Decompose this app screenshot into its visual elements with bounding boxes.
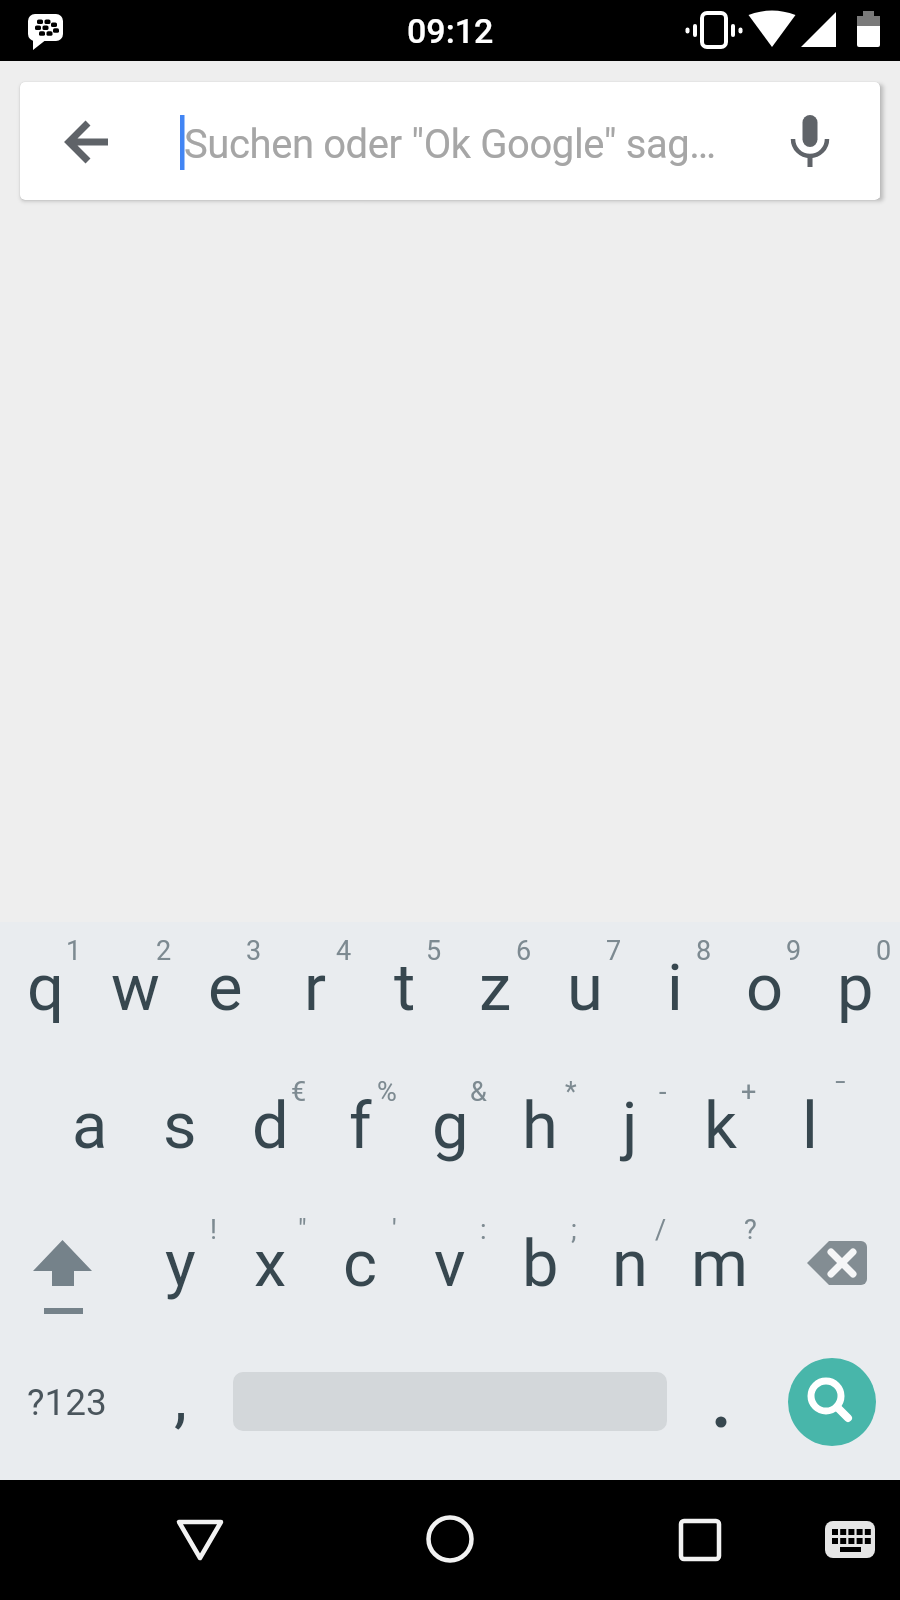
button[interactable] xyxy=(815,1511,885,1569)
staticText: € xyxy=(291,1076,307,1108)
button[interactable] xyxy=(420,1509,480,1569)
staticText: * xyxy=(565,1076,577,1108)
button[interactable] xyxy=(765,1198,900,1336)
staticText: 9 xyxy=(786,935,802,967)
staticText: x xyxy=(254,1226,287,1302)
button[interactable]: d xyxy=(225,1060,315,1198)
staticText: , xyxy=(174,1359,187,1436)
button[interactable]: e xyxy=(180,922,270,1060)
button[interactable]: s xyxy=(135,1060,225,1198)
staticText: h xyxy=(522,1088,558,1164)
button[interactable]: y xyxy=(135,1198,225,1336)
staticText: l xyxy=(802,1088,818,1164)
staticText: q xyxy=(27,950,64,1026)
staticText: 6 xyxy=(516,935,532,967)
button[interactable]: i xyxy=(630,922,720,1060)
staticText: 09:12 xyxy=(407,11,494,51)
button[interactable]: a xyxy=(45,1060,135,1198)
staticText: + xyxy=(741,1076,757,1108)
staticText: / xyxy=(655,1214,667,1246)
staticText: p xyxy=(837,950,874,1026)
button[interactable] xyxy=(788,1358,876,1446)
staticText: o xyxy=(746,950,784,1026)
staticText: s xyxy=(163,1088,197,1164)
button[interactable]: m xyxy=(675,1198,765,1336)
staticText: 3 xyxy=(246,935,262,967)
staticText: t xyxy=(394,950,416,1026)
staticText: b xyxy=(522,1226,559,1302)
staticText: a xyxy=(72,1088,108,1164)
staticText: u xyxy=(567,950,603,1026)
staticText: ¯ xyxy=(834,1076,847,1108)
button[interactable]: f xyxy=(315,1060,405,1198)
button[interactable]: , xyxy=(134,1336,226,1468)
staticText: 0 xyxy=(876,935,892,967)
staticText: w xyxy=(111,950,160,1026)
staticText: - xyxy=(659,1076,667,1108)
button[interactable] xyxy=(170,1512,230,1568)
staticText: 7 xyxy=(606,935,622,967)
staticText: ' xyxy=(392,1214,397,1246)
staticText: z xyxy=(479,950,512,1026)
staticText: 8 xyxy=(696,935,712,967)
staticText: ?123 xyxy=(27,1381,107,1424)
staticText: : xyxy=(480,1214,487,1246)
button[interactable]: w xyxy=(90,922,180,1060)
staticText: 4 xyxy=(336,935,352,967)
staticText: r xyxy=(304,950,327,1026)
staticText: g xyxy=(432,1088,469,1164)
staticText: " xyxy=(298,1214,307,1246)
staticText: 5 xyxy=(426,935,442,967)
staticText: v xyxy=(434,1226,466,1302)
button[interactable]: t xyxy=(360,922,450,1060)
button[interactable]: Suchen oder "Ok Google" sag… xyxy=(20,82,880,200)
staticText: i xyxy=(667,950,683,1026)
button[interactable]: n xyxy=(585,1198,675,1336)
staticText: k xyxy=(704,1088,737,1164)
button[interactable]: q xyxy=(0,922,90,1060)
button[interactable]: b xyxy=(495,1198,585,1336)
staticText: c xyxy=(343,1226,378,1302)
button[interactable]: g xyxy=(405,1060,495,1198)
staticText: ? xyxy=(744,1214,757,1246)
staticText: ; xyxy=(571,1214,577,1246)
staticText: m xyxy=(691,1226,749,1302)
staticText: n xyxy=(612,1226,648,1302)
button[interactable]: z xyxy=(450,922,540,1060)
button[interactable]: r xyxy=(270,922,360,1060)
button[interactable]: k xyxy=(675,1060,765,1198)
button[interactable]: ?123 xyxy=(0,1336,134,1468)
staticText: ! xyxy=(210,1214,217,1246)
staticText: % xyxy=(377,1076,397,1108)
button[interactable]: v xyxy=(405,1198,495,1336)
button[interactable]: u xyxy=(540,922,630,1060)
button[interactable]: j xyxy=(585,1060,675,1198)
button[interactable] xyxy=(0,1198,135,1336)
button[interactable]: l xyxy=(765,1060,855,1198)
staticText: d xyxy=(252,1088,289,1164)
button[interactable]: x xyxy=(225,1198,315,1336)
button[interactable]: c xyxy=(315,1198,405,1336)
staticText: j xyxy=(622,1088,638,1164)
button[interactable] xyxy=(670,1510,730,1570)
staticText: 1 xyxy=(66,935,82,967)
staticText: y xyxy=(165,1226,196,1302)
button[interactable]: o xyxy=(720,922,810,1060)
button[interactable]: h xyxy=(495,1060,585,1198)
staticText: & xyxy=(470,1076,487,1108)
staticText: f xyxy=(349,1088,372,1164)
staticText: Suchen oder "Ok Google" sag… xyxy=(184,121,716,168)
staticText: 2 xyxy=(156,935,172,967)
staticText: e xyxy=(208,950,243,1026)
button[interactable] xyxy=(674,1336,766,1468)
button[interactable]: p xyxy=(810,922,900,1060)
